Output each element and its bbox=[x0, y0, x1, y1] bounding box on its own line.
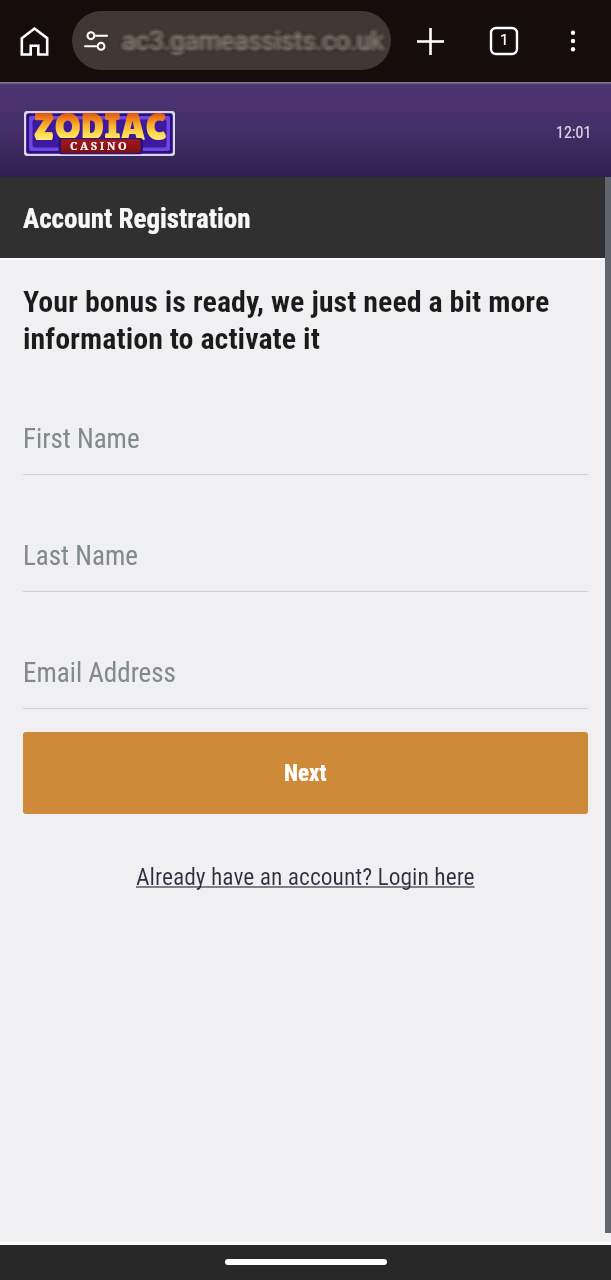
staticText: ac3.gameassists.co.uk bbox=[119, 21, 381, 51]
staticText: ac3.gameassists.co.uk bbox=[118, 26, 380, 56]
staticText: ac3.gameassists.co.uk bbox=[125, 21, 387, 51]
staticText: ac3.gameassists.co.uk bbox=[121, 23, 383, 53]
staticText: ac3.gameassists.co.uk bbox=[124, 30, 386, 60]
staticText: ac3.gameassists.co.uk bbox=[118, 24, 380, 54]
staticText: ac3.gameassists.co.uk bbox=[124, 28, 386, 58]
staticText: ac3.gameassists.co.uk bbox=[125, 26, 387, 56]
staticText: ac3.gameassists.co.uk bbox=[124, 23, 386, 53]
staticText: ac3.gameassists.co.uk bbox=[122, 24, 384, 54]
staticText: ac3.gameassists.co.uk bbox=[119, 22, 381, 52]
staticText: ac3.gameassists.co.uk bbox=[123, 21, 385, 51]
staticText: ac3.gameassists.co.uk bbox=[117, 25, 379, 55]
staticText: ac3.gameassists.co.uk bbox=[124, 26, 386, 56]
staticText: ac3.gameassists.co.uk bbox=[126, 23, 388, 53]
staticText: ac3.gameassists.co.uk bbox=[120, 26, 382, 56]
staticText: ac3.gameassists.co.uk bbox=[127, 27, 389, 57]
staticText: ac3.gameassists.co.uk bbox=[118, 26, 380, 56]
staticText: ac3.gameassists.co.uk bbox=[125, 23, 387, 53]
staticText: ac3.gameassists.co.uk bbox=[122, 25, 384, 55]
staticText: ac3.gameassists.co.uk bbox=[122, 23, 384, 53]
staticText: First Name bbox=[23, 423, 140, 455]
staticText: ac3.gameassists.co.uk bbox=[120, 25, 382, 55]
staticText: Next bbox=[284, 760, 327, 787]
button[interactable]: Last Name bbox=[23, 540, 588, 611]
staticText: Account Registration bbox=[23, 203, 251, 235]
staticText: ac3.gameassists.co.uk bbox=[122, 30, 384, 60]
button[interactable]: Home bbox=[13, 20, 55, 62]
staticText: ac3.gameassists.co.uk bbox=[125, 25, 387, 55]
staticText: ac3.gameassists.co.uk bbox=[123, 26, 385, 56]
staticText: ac3.gameassists.co.uk bbox=[119, 23, 381, 53]
button[interactable]: Email Address bbox=[23, 657, 588, 728]
staticText: ac3.gameassists.co.uk bbox=[120, 28, 382, 58]
staticText: ac3.gameassists.co.uk bbox=[120, 22, 382, 52]
staticText: ac3.gameassists.co.uk bbox=[126, 28, 388, 58]
staticText: ac3.gameassists.co.uk bbox=[124, 27, 386, 57]
staticText: ac3.gameassists.co.uk bbox=[125, 26, 387, 56]
staticText: ac3.gameassists.co.uk bbox=[118, 24, 380, 54]
button[interactable]: More options bbox=[552, 20, 594, 62]
button[interactable]: Switch or close tabs bbox=[483, 20, 525, 62]
staticText: ac3.gameassists.co.uk bbox=[122, 26, 384, 56]
staticText: ac3.gameassists.co.uk bbox=[120, 30, 382, 60]
staticText: ac3.gameassists.co.uk bbox=[121, 29, 383, 59]
staticText: ac3.gameassists.co.uk bbox=[119, 28, 381, 58]
staticText: ac3.gameassists.co.uk bbox=[125, 30, 387, 60]
staticText: ac3.gameassists.co.uk bbox=[127, 25, 389, 55]
staticText: Last Name bbox=[23, 540, 138, 572]
staticText: ac3.gameassists.co.uk bbox=[127, 28, 389, 58]
button[interactable]: Already have an account? Login here bbox=[23, 857, 588, 897]
staticText: ac3.gameassists.co.uk bbox=[118, 26, 380, 56]
staticText: ac3.gameassists.co.uk bbox=[118, 29, 380, 59]
staticText: ac3.gameassists.co.uk bbox=[121, 22, 383, 52]
staticText: ac3.gameassists.co.uk bbox=[125, 22, 387, 52]
button[interactable]: Search or type web address bbox=[72, 11, 391, 70]
staticText: ac3.gameassists.co.uk bbox=[118, 28, 380, 58]
staticText: ac3.gameassists.co.uk bbox=[123, 22, 385, 52]
staticText: ac3.gameassists.co.uk bbox=[127, 26, 389, 56]
staticText: ac3.gameassists.co.uk bbox=[119, 30, 381, 60]
button[interactable]: Next bbox=[23, 732, 588, 814]
staticText: ac3.gameassists.co.uk bbox=[117, 26, 379, 56]
staticText: ac3.gameassists.co.uk bbox=[123, 30, 385, 60]
staticText: ac3.gameassists.co.uk bbox=[124, 29, 386, 59]
staticText: ac3.gameassists.co.uk bbox=[124, 24, 386, 54]
staticText: ac3.gameassists.co.uk bbox=[121, 25, 383, 55]
staticText: ac3.gameassists.co.uk bbox=[118, 22, 380, 52]
staticText: ac3.gameassists.co.uk bbox=[123, 25, 385, 55]
staticText: ac3.gameassists.co.uk bbox=[121, 30, 383, 60]
staticText: ac3.gameassists.co.uk bbox=[127, 27, 389, 57]
staticText: ac3.gameassists.co.uk bbox=[120, 29, 382, 59]
staticText: ac3.gameassists.co.uk bbox=[121, 28, 383, 58]
button[interactable]: First Name bbox=[23, 423, 588, 494]
staticText: ac3.gameassists.co.uk bbox=[127, 24, 389, 54]
staticText: ac3.gameassists.co.uk bbox=[119, 25, 381, 55]
staticText: ac3.gameassists.co.uk bbox=[126, 26, 388, 56]
staticText: ac3.gameassists.co.uk bbox=[124, 25, 386, 55]
staticText: ac3.gameassists.co.uk bbox=[122, 26, 384, 56]
staticText: ac3.gameassists.co.uk bbox=[118, 27, 380, 57]
staticText: ac3.gameassists.co.uk bbox=[124, 26, 386, 56]
staticText: ac3.gameassists.co.uk bbox=[119, 26, 381, 56]
staticText: ac3.gameassists.co.uk bbox=[118, 25, 380, 55]
staticText: ac3.gameassists.co.uk bbox=[118, 27, 380, 57]
button[interactable]: New tab bbox=[409, 20, 451, 62]
staticText: ac3.gameassists.co.uk bbox=[124, 21, 386, 51]
staticText: ac3.gameassists.co.uk bbox=[121, 24, 383, 54]
staticText: ac3.gameassists.co.uk bbox=[118, 28, 380, 58]
staticText: ac3.gameassists.co.uk bbox=[120, 24, 382, 54]
staticText: ac3.gameassists.co.uk bbox=[118, 26, 380, 56]
staticText: ac3.gameassists.co.uk bbox=[122, 22, 384, 52]
staticText: ac3.gameassists.co.uk bbox=[127, 26, 389, 56]
staticText: ac3.gameassists.co.uk bbox=[125, 27, 387, 57]
staticText: ac3.gameassists.co.uk bbox=[118, 23, 380, 53]
staticText: ac3.gameassists.co.uk bbox=[119, 24, 381, 54]
staticText: ac3.gameassists.co.uk bbox=[121, 21, 383, 51]
staticText: ac3.gameassists.co.uk bbox=[120, 26, 382, 56]
staticText: ac3.gameassists.co.uk bbox=[120, 27, 382, 57]
staticText: Already have an account? Login here bbox=[136, 863, 475, 891]
staticText: ac3.gameassists.co.uk bbox=[127, 26, 389, 56]
staticText: Email Address bbox=[23, 657, 176, 689]
staticText: ac3.gameassists.co.uk bbox=[127, 23, 389, 53]
staticText: Your bonus is ready, we just need a bit … bbox=[23, 284, 568, 357]
